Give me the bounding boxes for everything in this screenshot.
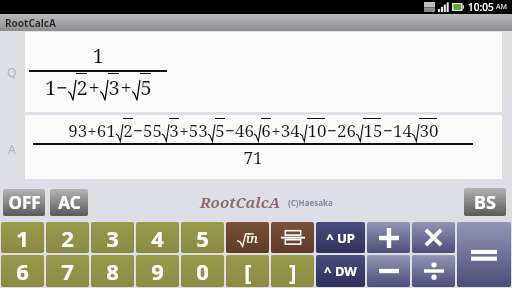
staticText: 1 bbox=[92, 42, 104, 69]
staticText: 4 bbox=[151, 223, 164, 253]
button[interactable]: ^ UP bbox=[316, 222, 365, 253]
staticText: 5 bbox=[215, 119, 225, 142]
button[interactable]: square root of n bbox=[226, 222, 269, 253]
staticText: 0 bbox=[196, 256, 209, 286]
staticText: [ bbox=[244, 256, 252, 286]
staticText: 5 bbox=[140, 74, 152, 101]
staticText: 3 bbox=[106, 223, 119, 253]
staticText: 1− bbox=[45, 74, 68, 101]
staticText: 6 bbox=[16, 256, 29, 286]
button[interactable]: 4 bbox=[136, 222, 179, 253]
staticText: OFF bbox=[8, 191, 41, 214]
staticText: + bbox=[88, 74, 100, 101]
button[interactable]: 6 bbox=[1, 255, 44, 287]
staticText: 2 bbox=[123, 119, 133, 142]
staticText: 7 bbox=[61, 256, 74, 286]
staticText: A bbox=[8, 141, 16, 157]
staticText: ^ UP bbox=[326, 229, 355, 247]
staticText: 71 bbox=[243, 146, 263, 169]
staticText: 1 bbox=[16, 223, 29, 253]
button[interactable]: Plus bbox=[367, 222, 410, 253]
staticText: ^ DW bbox=[324, 262, 357, 280]
staticText: ] bbox=[289, 256, 297, 286]
button[interactable]: Minus bbox=[367, 255, 410, 287]
staticText: AC bbox=[58, 191, 81, 214]
staticText: 8 bbox=[106, 256, 119, 286]
staticText: RootCalcA bbox=[200, 192, 280, 212]
staticText: −46 bbox=[225, 119, 254, 142]
staticText: in bbox=[246, 229, 258, 247]
button[interactable]: Divide bbox=[412, 255, 455, 287]
button[interactable]: Multiply bbox=[412, 222, 455, 253]
staticText: 2 bbox=[76, 74, 88, 101]
staticText: −14 bbox=[383, 119, 412, 142]
staticText: 6 bbox=[261, 119, 271, 142]
staticText: 9 bbox=[151, 256, 164, 286]
staticText: +34 bbox=[271, 119, 300, 142]
staticText: Q bbox=[7, 64, 17, 80]
button[interactable]: BS bbox=[464, 188, 506, 216]
staticText: + bbox=[120, 74, 132, 101]
button[interactable]: 3 bbox=[91, 222, 134, 253]
staticText: 2 bbox=[61, 223, 74, 253]
button[interactable]: [ bbox=[226, 255, 269, 287]
button[interactable]: 5 bbox=[181, 222, 224, 253]
button[interactable]: Equals bbox=[457, 222, 511, 287]
button[interactable]: ^ DW bbox=[316, 255, 365, 287]
staticText: 10 bbox=[307, 119, 327, 142]
staticText: 93+61 bbox=[68, 119, 116, 142]
staticText: −26 bbox=[327, 119, 356, 142]
button[interactable]: 8 bbox=[91, 255, 134, 287]
staticText: RootCalcA bbox=[5, 16, 56, 30]
staticText: 3 bbox=[169, 119, 179, 142]
staticText: 15 bbox=[363, 119, 383, 142]
button[interactable]: OFF bbox=[3, 189, 45, 216]
staticText: 30 bbox=[419, 119, 439, 142]
staticText: BS bbox=[474, 190, 496, 215]
staticText: −55 bbox=[133, 119, 162, 142]
staticText: 10:05 bbox=[468, 0, 494, 14]
button[interactable]: 7 bbox=[46, 255, 89, 287]
button[interactable]: ] bbox=[271, 255, 314, 287]
staticText: 3 bbox=[108, 74, 120, 101]
staticText: AM bbox=[496, 2, 508, 12]
staticText: (C)Haesaka bbox=[288, 197, 333, 208]
button[interactable]: 0 bbox=[181, 255, 224, 287]
button[interactable]: 9 bbox=[136, 255, 179, 287]
button[interactable]: 2 bbox=[46, 222, 89, 253]
staticText: 5 bbox=[196, 223, 209, 253]
button[interactable]: AC bbox=[50, 189, 88, 216]
button[interactable]: 1 bbox=[1, 222, 44, 253]
button[interactable]: Fraction bbox=[271, 222, 314, 253]
staticText: +53 bbox=[179, 119, 208, 142]
